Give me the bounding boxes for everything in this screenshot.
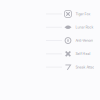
button[interactable]: Lunar Rock [65,21,93,34]
staticText: Tiger Fox [75,12,90,16]
button[interactable]: Tiger Fox [65,7,93,21]
staticText: Anti-Venom [75,38,93,43]
staticText: Lunar Rock [75,25,93,29]
staticText: Self Heal [75,52,90,56]
staticText: Sneak Attac [75,65,94,69]
button[interactable]: Sneak Attac [65,60,93,74]
button[interactable]: Anti-Venom [65,34,93,47]
button[interactable]: Self Heal [65,47,93,60]
